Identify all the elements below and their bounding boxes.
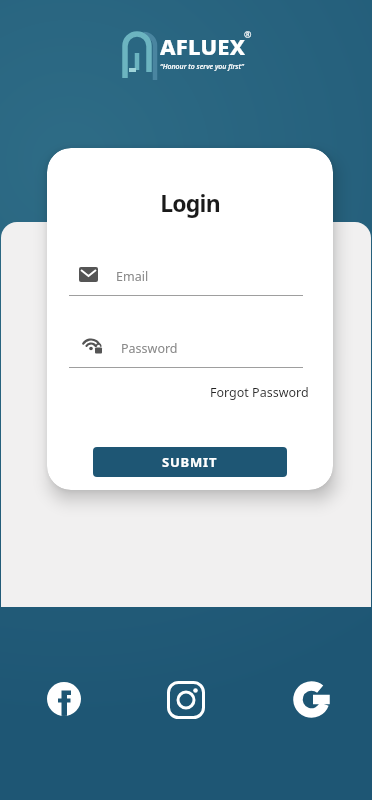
button[interactable]: Email [69, 256, 311, 296]
staticText: Login [47, 187, 333, 218]
staticText: “Honour to serve you first” [160, 62, 244, 72]
staticText: AFLUEX [160, 31, 246, 61]
staticText: SUBMIT [162, 453, 218, 471]
button[interactable]: SUBMIT [93, 447, 287, 477]
button[interactable] [47, 682, 81, 716]
button[interactable] [167, 681, 205, 719]
button[interactable] [293, 681, 330, 718]
staticText: Password [121, 340, 178, 357]
button[interactable]: Forgot Password [210, 384, 310, 404]
staticText: ® [244, 28, 252, 40]
button[interactable]: Password [69, 328, 311, 368]
staticText: Email [116, 268, 149, 285]
staticText: Forgot Password [210, 384, 309, 401]
